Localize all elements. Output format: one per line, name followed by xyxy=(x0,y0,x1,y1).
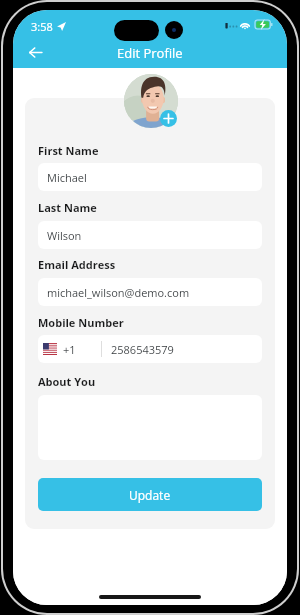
button[interactable]: Update xyxy=(38,478,262,511)
staticText: 2586543579 xyxy=(111,342,174,357)
button[interactable]: Change profile photo xyxy=(160,110,177,127)
button[interactable]: +1 xyxy=(38,335,262,363)
button[interactable]: Wilson xyxy=(38,221,262,249)
staticText: 3:58 xyxy=(31,19,53,34)
staticText: Update xyxy=(129,487,171,503)
staticText: Edit Profile xyxy=(117,44,183,62)
button[interactable]: Back xyxy=(20,37,50,67)
staticText: Mobile Number xyxy=(38,315,124,330)
staticText: Michael xyxy=(47,170,87,185)
staticText: About You xyxy=(38,374,96,389)
staticText: Last Name xyxy=(38,200,97,215)
staticText: Email Address xyxy=(38,257,116,272)
button[interactable]: Michael xyxy=(38,163,262,191)
button[interactable]: Profile photo xyxy=(124,74,178,128)
staticText: +1 xyxy=(63,342,76,357)
staticText: First Name xyxy=(38,143,99,158)
staticText: michael_wilson@demo.com xyxy=(47,285,190,300)
staticText: Wilson xyxy=(47,228,82,243)
button[interactable]: michael_wilson@demo.com xyxy=(38,278,262,306)
